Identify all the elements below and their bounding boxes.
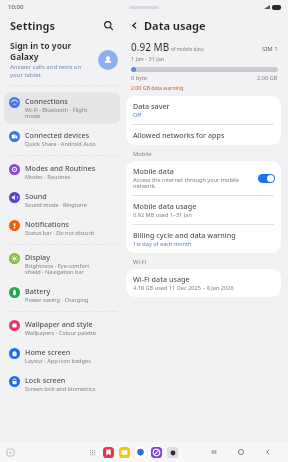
staticText: Data saver: [133, 101, 170, 111]
staticText: Brightness · Eye comfort shield · Naviga…: [25, 262, 90, 276]
button[interactable]: Mobile data: [126, 161, 281, 195]
staticText: Display: [25, 252, 50, 262]
staticText: 1st day of each month: [133, 240, 192, 248]
button[interactable]: Back: [262, 446, 274, 458]
button[interactable]: Modes and Routines: [4, 159, 120, 185]
button[interactable]: Home: [235, 446, 247, 458]
staticText: Wi-Fi · Bluetooth · Flight mode: [25, 106, 88, 120]
button[interactable]: Recents: [208, 446, 220, 458]
button[interactable]: Connected devices: [4, 126, 120, 152]
button[interactable]: Wi-Fi data usage: [126, 269, 281, 297]
staticText: Modes and Routines: [25, 163, 96, 173]
staticText: Battery: [25, 286, 51, 296]
button[interactable]: Mobile data usage: [126, 196, 281, 224]
staticText: SIM 1: [262, 45, 278, 53]
staticText: Home screen: [25, 347, 71, 357]
staticText: 2.00 GB: [257, 74, 278, 82]
button[interactable]: Mobile data toggle: [258, 174, 275, 183]
staticText: 1 Jan - 31 Jan: [131, 55, 165, 63]
button[interactable]: Sound: [4, 187, 120, 213]
staticText: Billing cycle and data warning: [133, 230, 236, 240]
button[interactable]: Allowed networks for apps: [126, 125, 281, 145]
button[interactable]: Notifications: [4, 215, 120, 241]
staticText: Modes · Routines: [25, 173, 71, 181]
button[interactable]: Connections: [4, 92, 120, 124]
button[interactable]: Sign in to your Galaxy: [10, 40, 118, 79]
button[interactable]: Lock screen: [4, 371, 120, 397]
button[interactable]: Phone: [103, 447, 114, 458]
staticText: Wallpapers · Colour palette: [25, 329, 97, 337]
staticText: Quick Share · Android Auto: [25, 140, 96, 148]
staticText: Connections: [25, 96, 68, 106]
staticText: Connected devices: [25, 130, 90, 140]
staticText: 0 byte: [131, 74, 148, 82]
staticText: 10:00: [8, 3, 24, 11]
button[interactable]: Apps: [87, 447, 98, 458]
staticText: Mobile data: [133, 166, 174, 176]
button[interactable]: Data saver: [126, 96, 281, 124]
staticText: Screen lock and biometrics: [25, 385, 96, 393]
button[interactable]: Billing cycle and data warning: [126, 225, 281, 253]
staticText: Mobile: [133, 150, 152, 158]
staticText: 2.00 GB data warning: [131, 84, 184, 91]
staticText: Mobile data usage: [133, 201, 197, 211]
button[interactable]: Display: [4, 248, 120, 280]
staticText: Off: [133, 111, 142, 119]
staticText: 0.92 MB used 1–31 Jan: [133, 211, 192, 219]
staticText: Lock screen: [25, 375, 66, 385]
staticText: Sound mode · Ringtone: [25, 201, 87, 209]
staticText: Settings: [10, 18, 56, 33]
staticText: Notifications: [25, 219, 69, 229]
staticText: Wi-Fi: [133, 258, 147, 266]
staticText: Access the internet through your mobile …: [133, 176, 239, 190]
staticText: Data usage: [144, 18, 206, 33]
button[interactable]: Wallpaper and style: [4, 315, 120, 341]
button[interactable]: Home screen: [4, 343, 120, 369]
staticText: of mobile data: [171, 46, 204, 53]
button[interactable]: Notes: [5, 447, 15, 457]
staticText: Sign in to your Galaxy: [10, 40, 72, 62]
staticText: 0.92 MB: [131, 40, 170, 54]
staticText: Layout · App icon badges: [25, 357, 91, 365]
button[interactable]: Search: [100, 17, 116, 33]
button[interactable]: Files: [119, 447, 130, 458]
staticText: Allowed networks for apps: [133, 130, 225, 140]
staticText: Wi-Fi data usage: [133, 274, 190, 284]
button[interactable]: Browser: [151, 447, 162, 458]
staticText: Status bar · Do not disturb: [25, 229, 95, 237]
button[interactable]: Messages: [135, 447, 146, 458]
staticText: Sound: [25, 191, 47, 201]
button[interactable]: Recent app: [167, 447, 178, 458]
button[interactable]: Back: [127, 18, 141, 32]
staticText: 4.18 GB used 11 Dec 2025 – 8 Jan 2026: [133, 284, 234, 292]
staticText: Answer calls and texts on your tablet.: [10, 63, 82, 79]
button[interactable]: Battery: [4, 282, 120, 308]
staticText: Power saving · Charging: [25, 296, 89, 304]
staticText: Wallpaper and style: [25, 319, 93, 329]
